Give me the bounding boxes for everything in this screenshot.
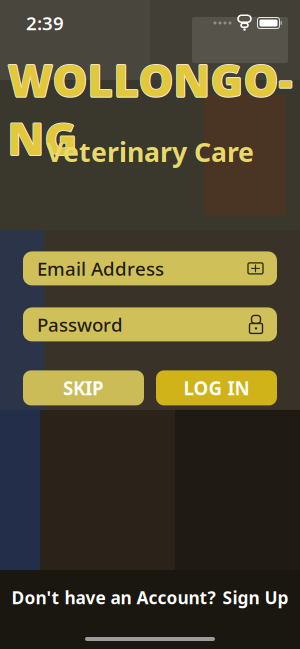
staticText: 2:39: [26, 11, 64, 35]
staticText: SKIP: [63, 375, 104, 400]
staticText: WOLLONGONG: [7, 51, 292, 168]
button[interactable]: Email Address: [23, 251, 277, 285]
staticText: WOLLONGONG: [7, 51, 292, 167]
staticText: Don't have an Account?: [11, 586, 215, 609]
staticText: Password: [37, 312, 123, 337]
staticText: LOG IN: [183, 375, 249, 400]
button[interactable]: Password: [23, 307, 277, 341]
staticText: WOLLONGONG: [7, 50, 292, 167]
staticText: WOLLONGONG: [7, 51, 292, 167]
staticText: Sign Up: [222, 586, 288, 609]
staticText: WOLLONGONG: [8, 51, 293, 167]
staticText: Email Address: [37, 256, 164, 281]
button[interactable]: SKIP: [23, 370, 144, 405]
button[interactable]: LOG IN: [156, 370, 277, 405]
button[interactable]: Sign Up: [222, 586, 288, 609]
staticText: Veterinary Care: [46, 134, 254, 169]
